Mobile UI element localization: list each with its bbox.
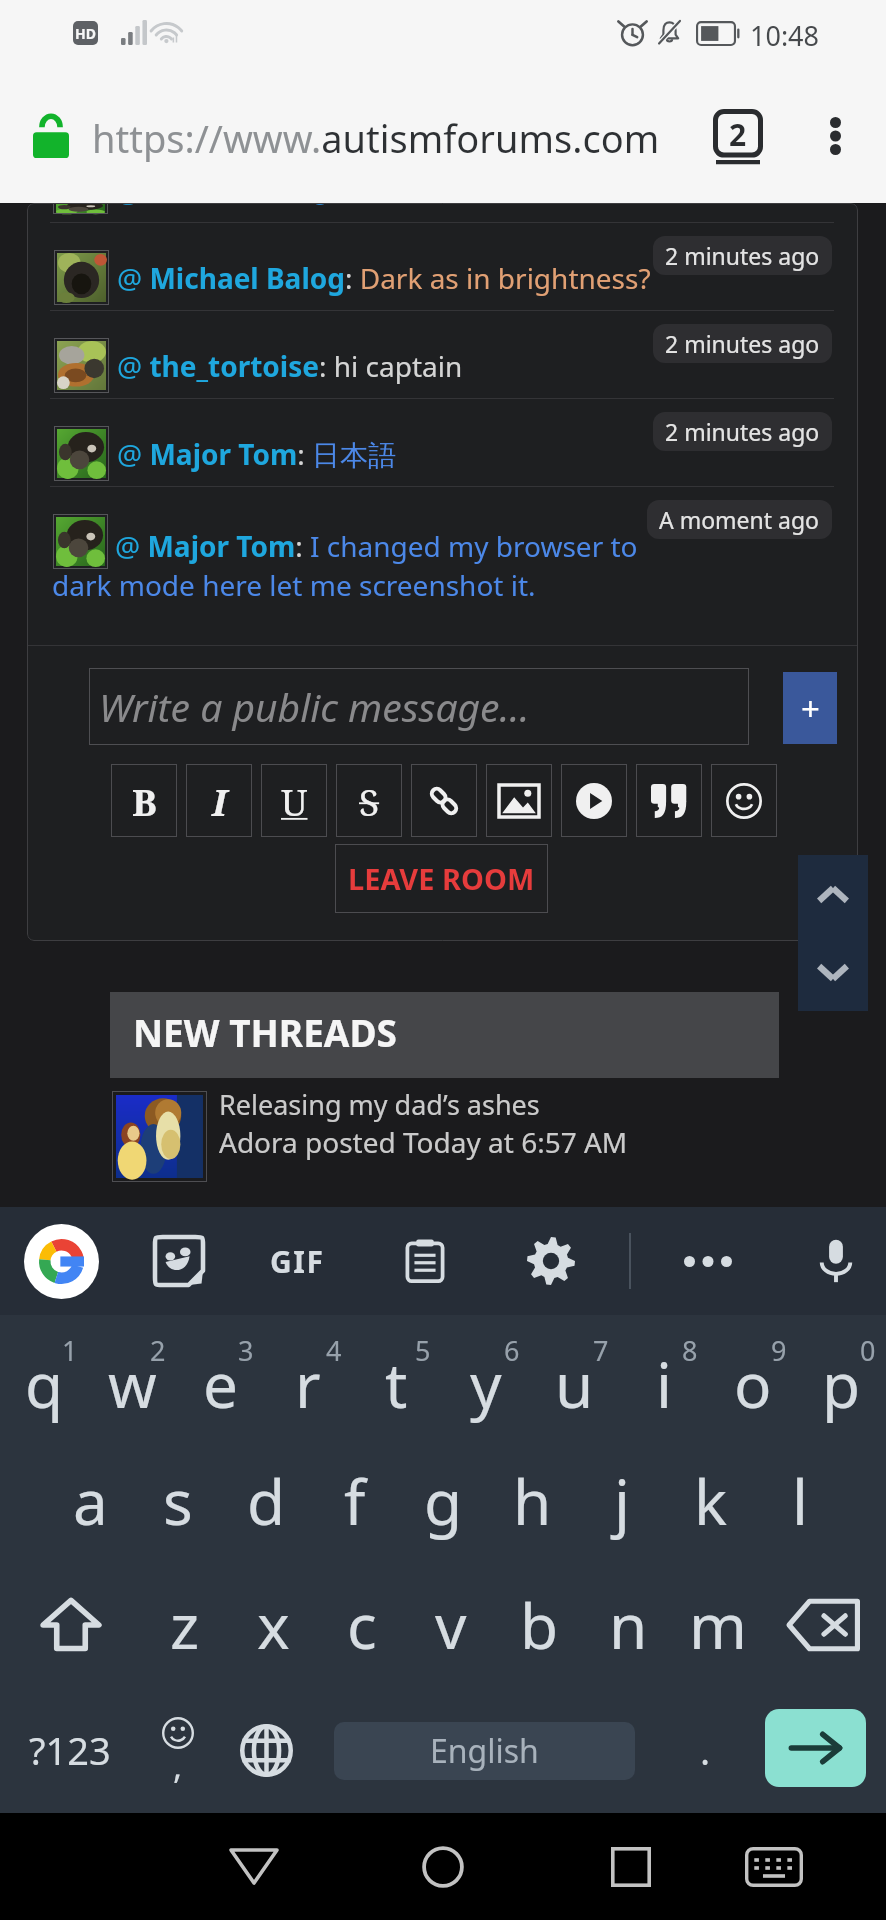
button[interactable]: c bbox=[317, 1563, 406, 1687]
button[interactable]: @ Michael Balog: Dark as in brightness? bbox=[27, 223, 858, 310]
button[interactable]: Recent apps bbox=[573, 1813, 688, 1920]
button[interactable]: English bbox=[334, 1722, 635, 1780]
staticText: 2 bbox=[729, 114, 747, 155]
staticText: 9 bbox=[771, 1332, 787, 1369]
button[interactable]: Write a public message... bbox=[89, 668, 749, 745]
staticText: t bbox=[385, 1342, 408, 1426]
button[interactable]: 6 bbox=[441, 1315, 530, 1439]
button[interactable]: Link bbox=[411, 764, 477, 837]
staticText: w bbox=[108, 1342, 157, 1426]
button[interactable]: 1 bbox=[0, 1315, 88, 1439]
button[interactable]: . bbox=[667, 1687, 743, 1813]
button[interactable]: Underline bbox=[261, 764, 327, 837]
button[interactable]: Google search bbox=[24, 1224, 99, 1299]
staticText: c bbox=[347, 1583, 377, 1667]
button[interactable]: Bold bbox=[111, 764, 177, 837]
button[interactable]: GIF bbox=[266, 1230, 328, 1292]
staticText: b bbox=[520, 1583, 559, 1667]
button[interactable]: k bbox=[666, 1439, 755, 1563]
button[interactable]: Insert media bbox=[561, 764, 627, 837]
button[interactable]: h bbox=[488, 1439, 577, 1563]
button[interactable]: Emoji bbox=[140, 1687, 216, 1813]
button[interactable]: Hide keyboard bbox=[716, 1813, 831, 1920]
button[interactable]: @ the_tortoise: hi captain bbox=[27, 311, 858, 398]
button[interactable]: v bbox=[406, 1563, 495, 1687]
staticText: 7 bbox=[593, 1332, 609, 1369]
button[interactable]: Scroll up bbox=[798, 855, 868, 933]
staticText: Write a public message... bbox=[99, 680, 530, 733]
button[interactable]: l bbox=[755, 1439, 844, 1563]
button[interactable]: Home bbox=[385, 1813, 500, 1920]
button[interactable]: Italic bbox=[186, 764, 252, 837]
button[interactable]: n bbox=[584, 1563, 673, 1687]
button[interactable]: s bbox=[134, 1439, 222, 1563]
button[interactable]: @ Major Tom: I changed my browser to bbox=[27, 487, 858, 642]
staticText: NEW THREADS bbox=[133, 1007, 397, 1057]
staticText: g bbox=[424, 1459, 463, 1543]
button[interactable]: Voice input bbox=[805, 1230, 867, 1292]
button[interactable]: b bbox=[495, 1563, 584, 1687]
staticText: , bbox=[173, 1743, 183, 1789]
button[interactable]: Stickers bbox=[148, 1230, 210, 1292]
button[interactable]: 5 bbox=[352, 1315, 441, 1439]
button[interactable]: Clipboard bbox=[394, 1230, 456, 1292]
staticText: q bbox=[25, 1342, 64, 1426]
button[interactable]: Tabs bbox=[700, 97, 776, 175]
button[interactable]: Scroll down bbox=[798, 933, 868, 1011]
staticText: x bbox=[257, 1583, 290, 1667]
staticText: English bbox=[430, 1729, 539, 1773]
button[interactable]: LEAVE ROOM bbox=[335, 844, 548, 913]
button[interactable]: 0 bbox=[797, 1315, 886, 1439]
button[interactable]: Releasing my dad’s ashes bbox=[112, 1091, 628, 1182]
button[interactable]: m bbox=[673, 1563, 762, 1687]
button[interactable]: ?123 bbox=[8, 1687, 132, 1813]
button[interactable]: More options bbox=[800, 97, 870, 175]
staticText: n bbox=[609, 1583, 648, 1667]
staticText: p bbox=[822, 1342, 861, 1426]
button[interactable]: a bbox=[46, 1439, 134, 1563]
button[interactable]: 8 bbox=[619, 1315, 708, 1439]
staticText: + bbox=[801, 686, 820, 731]
button[interactable]: 9 bbox=[708, 1315, 797, 1439]
button[interactable]: @ Major Tom: 日本語 bbox=[27, 399, 858, 486]
button[interactable]: Settings bbox=[520, 1230, 582, 1292]
staticText: ?123 bbox=[29, 1724, 111, 1776]
staticText: 5 bbox=[415, 1332, 431, 1369]
staticText: s bbox=[163, 1459, 193, 1543]
staticText: @ Michael Balog: Dark as in brightness? bbox=[117, 259, 651, 297]
staticText: 0 bbox=[860, 1332, 876, 1369]
staticText: dark mode here let me screenshot it. bbox=[52, 566, 536, 604]
staticText: 3 bbox=[238, 1332, 254, 1369]
button[interactable]: Emoji bbox=[711, 764, 777, 837]
staticText: 10:48 bbox=[750, 17, 820, 54]
button[interactable]: More options bbox=[677, 1230, 739, 1292]
button[interactable]: Shift bbox=[0, 1563, 141, 1687]
button[interactable]: Strikethrough bbox=[336, 764, 402, 837]
button[interactable]: 7 bbox=[530, 1315, 619, 1439]
button[interactable]: Change language bbox=[228, 1687, 304, 1813]
button[interactable]: d bbox=[222, 1439, 310, 1563]
staticText: f bbox=[344, 1459, 366, 1543]
staticText: y bbox=[470, 1342, 502, 1426]
staticText: @ Major Tom: I changed my browser to bbox=[115, 527, 638, 565]
button[interactable]: Back bbox=[196, 1813, 311, 1920]
button[interactable]: j bbox=[577, 1439, 666, 1563]
button[interactable]: Quote bbox=[636, 764, 702, 837]
staticText: o bbox=[734, 1342, 772, 1426]
button[interactable]: f bbox=[310, 1439, 399, 1563]
button[interactable]: 2 bbox=[88, 1315, 176, 1439]
staticText: 4 bbox=[326, 1332, 342, 1369]
button[interactable]: g bbox=[399, 1439, 488, 1563]
button[interactable]: Insert image bbox=[486, 764, 552, 837]
button[interactable]: x bbox=[229, 1563, 317, 1687]
button[interactable]: 4 bbox=[264, 1315, 352, 1439]
button[interactable]: z bbox=[141, 1563, 229, 1687]
staticText: 2 bbox=[150, 1332, 166, 1369]
button[interactable]: Add attachment bbox=[783, 672, 837, 744]
button[interactable]: Enter bbox=[765, 1709, 866, 1787]
staticText: 2 minutes ago bbox=[665, 240, 820, 271]
staticText: d bbox=[247, 1459, 286, 1543]
staticText: k bbox=[694, 1459, 728, 1543]
button[interactable]: Backspace bbox=[762, 1563, 886, 1687]
button[interactable]: 3 bbox=[176, 1315, 264, 1439]
